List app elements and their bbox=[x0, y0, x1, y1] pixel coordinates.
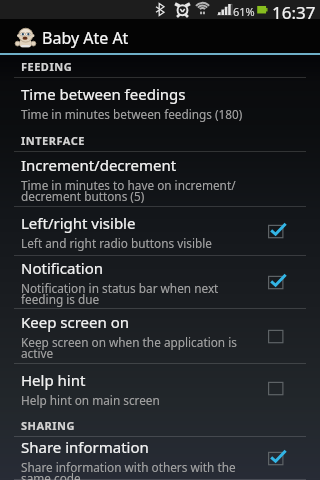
staticText: Left and right radio buttons visible bbox=[21, 235, 212, 251]
button[interactable]: Toggle bbox=[264, 270, 290, 296]
button[interactable]: Help hint bbox=[0, 364, 320, 413]
button[interactable]: Increment/decrement bbox=[0, 152, 320, 207]
button[interactable]: Notification bbox=[0, 256, 320, 309]
staticText: Left/right visible bbox=[21, 213, 136, 233]
button[interactable]: Time between feedings bbox=[0, 78, 320, 128]
staticText: Time between feedings bbox=[21, 84, 186, 104]
staticText: Baby Ate At bbox=[42, 27, 129, 49]
staticText: Keep screen on when the application is a… bbox=[21, 334, 237, 361]
staticText: Time in minutes to have on increment/ de… bbox=[21, 177, 236, 204]
button[interactable]: Baby Ate At bbox=[0, 19, 320, 53]
staticText: 16:37 bbox=[272, 1, 316, 20]
staticText: Share information bbox=[21, 437, 149, 457]
staticText: INTERFACE bbox=[21, 133, 85, 148]
staticText: Help hint bbox=[21, 370, 86, 390]
staticText: Keep screen on bbox=[21, 312, 130, 332]
button[interactable]: Toggle bbox=[264, 446, 290, 472]
button[interactable]: Share information bbox=[0, 437, 320, 480]
staticText: Help hint on main screen bbox=[21, 392, 160, 408]
button[interactable]: Toggle bbox=[264, 324, 290, 350]
staticText: Share information with others with the s… bbox=[21, 459, 236, 480]
button[interactable]: Toggle bbox=[264, 219, 290, 245]
staticText: Notification in status bar when next fee… bbox=[21, 280, 219, 307]
staticText: Increment/decrement bbox=[21, 155, 177, 175]
staticText: FEEDING bbox=[21, 59, 73, 74]
button[interactable]: Toggle bbox=[264, 376, 290, 402]
staticText: 61% bbox=[233, 4, 255, 19]
staticText: Notification bbox=[21, 258, 104, 278]
staticText: Time in minutes between feedings (180) bbox=[21, 106, 243, 122]
staticText: SHARING bbox=[21, 418, 75, 433]
button[interactable]: Left/right visible bbox=[0, 207, 320, 256]
button[interactable]: Keep screen on bbox=[0, 309, 320, 364]
